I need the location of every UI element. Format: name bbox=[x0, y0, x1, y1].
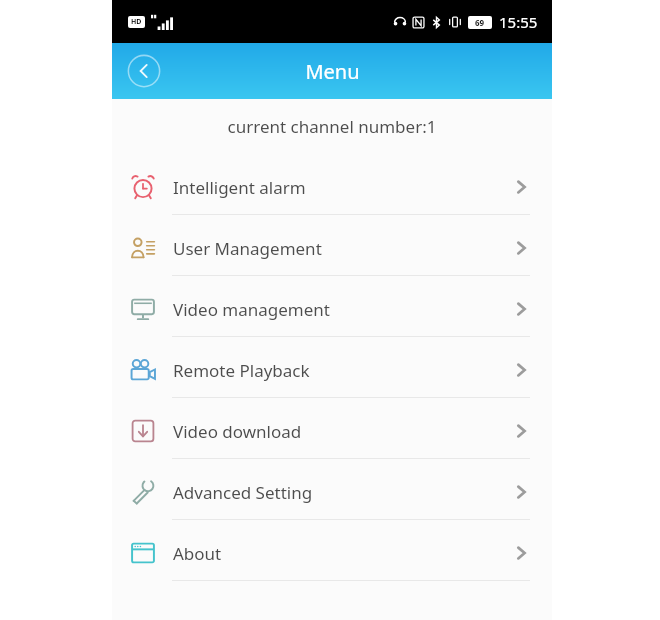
staticText: Remote Playback bbox=[173, 359, 512, 382]
staticText: Intelligent alarm bbox=[173, 176, 512, 199]
staticText: Menu bbox=[305, 58, 360, 85]
button[interactable]: User Management bbox=[112, 221, 552, 275]
button[interactable]: About bbox=[112, 526, 552, 580]
staticText: HD bbox=[131, 17, 142, 27]
staticText: About bbox=[173, 542, 512, 565]
button[interactable]: Video management bbox=[112, 282, 552, 336]
button[interactable]: Advanced Setting bbox=[112, 465, 552, 519]
staticText: current channel number:1 bbox=[112, 115, 552, 138]
button[interactable]: Intelligent alarm bbox=[112, 160, 552, 214]
staticText: Video download bbox=[173, 420, 512, 443]
button[interactable]: Remote Playback bbox=[112, 343, 552, 397]
button[interactable]: Video download bbox=[112, 404, 552, 458]
staticText: Video management bbox=[173, 298, 512, 321]
staticText: User Management bbox=[173, 237, 512, 260]
staticText: 15:55 bbox=[499, 12, 538, 32]
staticText: 69 bbox=[475, 17, 485, 28]
button[interactable]: Back bbox=[125, 52, 163, 90]
staticText: Advanced Setting bbox=[173, 481, 512, 504]
